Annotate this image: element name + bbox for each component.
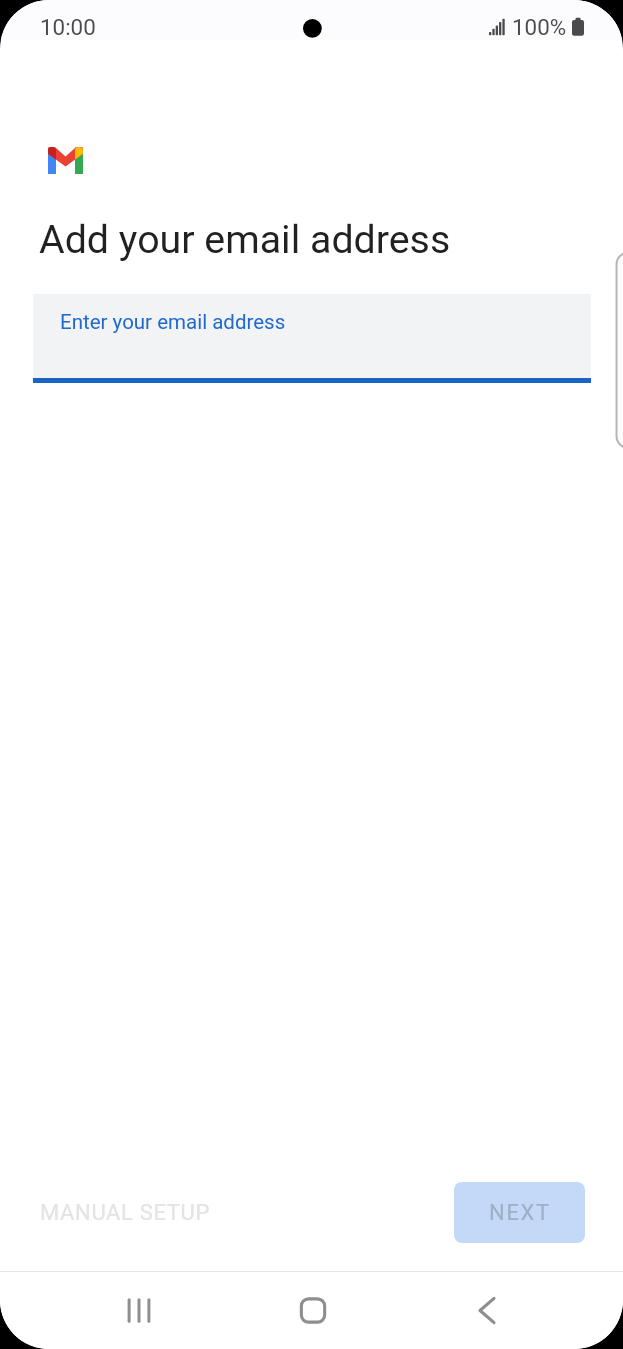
button[interactable]: MANUAL SETUP [24, 1186, 226, 1240]
button[interactable]: NEXT [454, 1182, 585, 1243]
staticText: Add your email address [39, 216, 451, 262]
staticText: Enter your email address [60, 310, 286, 334]
staticText: NEXT [489, 1200, 551, 1226]
staticText: MANUAL SETUP [40, 1200, 210, 1226]
staticText: 10:00 [40, 14, 96, 40]
button[interactable]: Home [226, 1272, 400, 1349]
staticText: 100% [512, 14, 567, 40]
button[interactable]: Recent apps [51, 1272, 226, 1349]
button[interactable]: Back [400, 1272, 574, 1349]
button[interactable]: Enter your email address [33, 294, 591, 383]
